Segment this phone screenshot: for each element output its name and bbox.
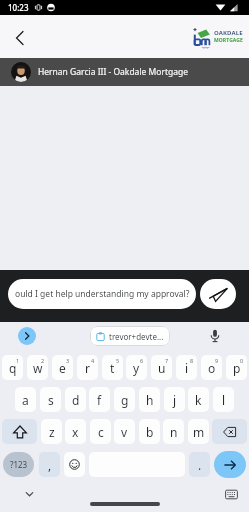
- button[interactable]: .: [189, 452, 210, 477]
- staticText: w: [33, 360, 43, 376]
- button[interactable]: [223, 486, 239, 502]
- staticText: l: [222, 392, 226, 408]
- button[interactable]: [214, 451, 246, 478]
- staticText: 0: [240, 357, 244, 364]
- staticText: 1: [16, 357, 20, 364]
- staticText: 2: [41, 357, 45, 364]
- staticText: j: [173, 392, 177, 408]
- staticText: n: [170, 424, 178, 440]
- button[interactable]: l: [213, 387, 234, 412]
- staticText: k: [195, 392, 202, 408]
- button[interactable]: p: [226, 355, 247, 380]
- button[interactable]: a: [15, 387, 36, 412]
- button[interactable]: y: [126, 355, 147, 380]
- staticText: OAKDALE: [214, 29, 243, 37]
- button[interactable]: [212, 419, 247, 444]
- staticText: 7: [165, 357, 169, 364]
- staticText: 5: [116, 357, 120, 364]
- staticText: y: [133, 360, 140, 376]
- staticText: 6: [140, 357, 144, 364]
- button[interactable]: s: [40, 387, 61, 412]
- button[interactable]: w: [27, 355, 48, 380]
- staticText: z: [49, 424, 55, 440]
- staticText: ?123: [10, 459, 28, 470]
- staticText: c: [98, 424, 104, 440]
- button[interactable]: ,: [39, 452, 60, 477]
- button[interactable]: b: [139, 419, 160, 444]
- staticText: x: [72, 424, 79, 440]
- staticText: v: [121, 424, 128, 440]
- button[interactable]: j: [164, 387, 185, 412]
- button[interactable]: e: [52, 355, 73, 380]
- button[interactable]: h: [139, 387, 160, 412]
- button[interactable]: [22, 487, 36, 501]
- staticText: m: [193, 424, 205, 440]
- staticText: s: [48, 392, 54, 408]
- staticText: trevor+devte...: [109, 331, 164, 342]
- staticText: 8: [190, 357, 194, 364]
- button[interactable]: trevor+devte...: [90, 326, 170, 346]
- staticText: b: [146, 424, 154, 440]
- button[interactable]: [64, 452, 85, 477]
- staticText: ,: [48, 457, 52, 473]
- staticText: 4: [91, 357, 95, 364]
- staticText: 3: [66, 357, 70, 364]
- staticText: MORTGAGE: [214, 37, 243, 44]
- staticText: 9: [215, 357, 219, 364]
- button[interactable]: r: [77, 355, 98, 380]
- button[interactable]: u: [151, 355, 172, 380]
- button[interactable]: [207, 328, 223, 344]
- staticText: .: [198, 457, 202, 473]
- button[interactable]: k: [188, 387, 209, 412]
- button[interactable]: f: [89, 387, 110, 412]
- button[interactable]: d: [65, 387, 86, 412]
- button[interactable]: [18, 327, 36, 345]
- button[interactable]: Hernan Garcia III - Oakdale Mortgage: [0, 58, 249, 86]
- staticText: e: [59, 360, 66, 376]
- staticText: a: [22, 392, 29, 408]
- button[interactable]: OAKDALE: [192, 27, 243, 46]
- button[interactable]: i: [176, 355, 197, 380]
- button[interactable]: x: [65, 419, 86, 444]
- button[interactable]: q: [2, 355, 23, 380]
- staticText: t: [110, 360, 115, 376]
- staticText: h: [146, 392, 154, 408]
- button[interactable]: v: [114, 419, 135, 444]
- button[interactable]: ?123: [3, 452, 34, 477]
- button[interactable]: m: [188, 419, 209, 444]
- button[interactable]: t: [102, 355, 123, 380]
- staticText: g: [121, 392, 129, 408]
- button[interactable]: o: [201, 355, 222, 380]
- button[interactable]: [2, 419, 37, 444]
- staticText: q: [9, 360, 17, 376]
- staticText: f: [97, 392, 102, 408]
- button[interactable]: c: [90, 419, 111, 444]
- button[interactable]: z: [41, 419, 62, 444]
- staticText: i: [185, 360, 189, 376]
- staticText: p: [233, 360, 241, 376]
- staticText: 10:23: [8, 2, 29, 13]
- button[interactable]: g: [114, 387, 135, 412]
- staticText: u: [158, 360, 166, 376]
- staticText: o: [208, 360, 216, 376]
- button[interactable]: [8, 25, 32, 49]
- button[interactable]: n: [163, 419, 184, 444]
- staticText: r: [85, 360, 90, 376]
- button[interactable]: ould I get help understanding my approva…: [8, 279, 196, 309]
- staticText: d: [72, 392, 80, 408]
- button[interactable]: [200, 279, 236, 309]
- staticText: Hernan Garcia III - Oakdale Mortgage: [38, 66, 189, 78]
- staticText: ould I get help understanding my approva…: [15, 288, 190, 300]
